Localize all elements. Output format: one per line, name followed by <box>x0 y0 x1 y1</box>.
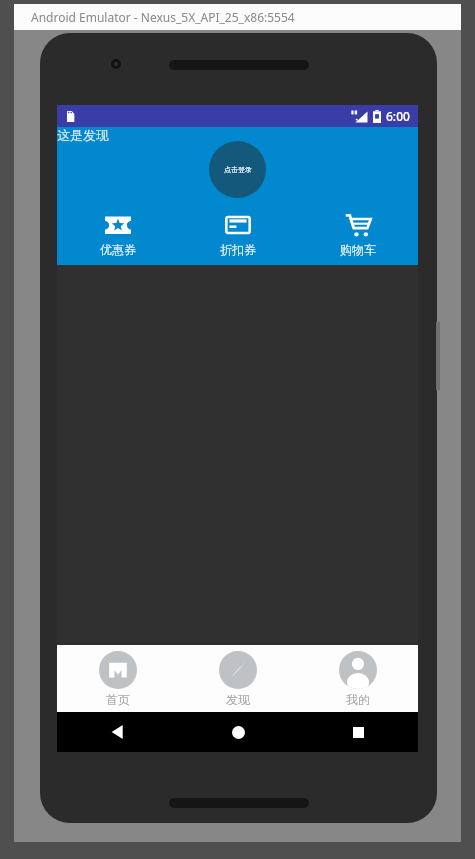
staticText: 发现 <box>226 692 250 707</box>
button[interactable]: Profile <box>298 645 418 712</box>
button[interactable]: 点击登录 <box>209 141 266 198</box>
staticText: 点击登录 <box>224 165 252 174</box>
staticText: 购物车 <box>340 242 376 257</box>
button[interactable]: 折扣券 <box>178 212 298 257</box>
staticText: Android Emulator - Nexus_5X_API_25_x86:5… <box>31 9 295 25</box>
button[interactable]: 优惠券 <box>57 212 178 257</box>
button[interactable]: Recent apps <box>298 712 418 752</box>
staticText: 这是发现 <box>57 127 109 143</box>
staticText: 我的 <box>346 692 370 707</box>
staticText: 优惠券 <box>100 242 136 257</box>
button[interactable]: Discover <box>178 645 298 712</box>
button[interactable]: Home <box>57 645 178 712</box>
staticText: 6:00 <box>386 108 410 124</box>
button[interactable]: Home <box>178 712 298 752</box>
staticText: 首页 <box>106 692 130 707</box>
staticText: 折扣券 <box>220 242 256 257</box>
button[interactable]: 购物车 <box>298 212 418 257</box>
button[interactable]: Back <box>57 712 178 752</box>
